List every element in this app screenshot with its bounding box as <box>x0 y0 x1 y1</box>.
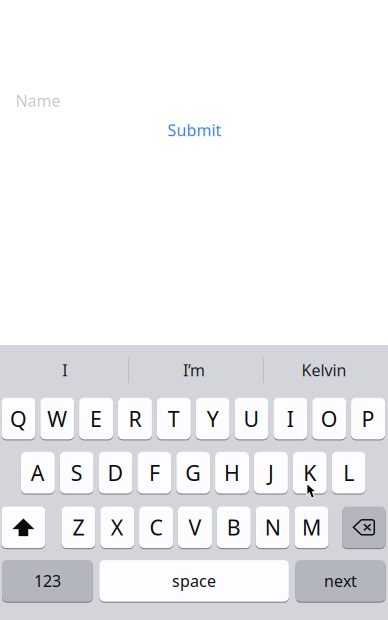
staticText: T <box>168 404 180 433</box>
staticText: O <box>321 404 338 433</box>
button[interactable]: Z <box>61 505 95 549</box>
staticText: I <box>62 359 67 381</box>
button[interactable]: E <box>79 397 113 440</box>
staticText: J <box>268 458 274 487</box>
staticText: Z <box>72 513 84 541</box>
button[interactable]: I <box>273 397 307 440</box>
button[interactable]: W <box>40 397 74 440</box>
staticText: B <box>227 513 241 541</box>
staticText: Name <box>15 90 60 111</box>
button[interactable]: space <box>99 559 289 603</box>
staticText: C <box>150 513 163 541</box>
staticText: H <box>224 458 240 487</box>
button[interactable]: Kelvin <box>259 346 388 394</box>
button[interactable]: K <box>293 451 327 494</box>
staticText: next <box>324 570 357 591</box>
staticText: W <box>47 404 67 433</box>
button[interactable]: R <box>118 397 152 440</box>
staticText: V <box>188 513 201 541</box>
button[interactable]: Q <box>1 397 35 440</box>
staticText: G <box>185 458 201 487</box>
button[interactable]: next <box>296 559 385 603</box>
button[interactable]: I <box>0 346 129 394</box>
staticText: E <box>90 404 102 433</box>
button[interactable]: D <box>98 451 132 494</box>
button[interactable]: Shift <box>1 505 45 549</box>
button[interactable]: Y <box>196 397 230 440</box>
button[interactable]: S <box>60 451 94 494</box>
button[interactable]: U <box>234 397 268 440</box>
staticText: X <box>111 513 124 541</box>
button[interactable]: L <box>332 451 366 494</box>
button[interactable]: H <box>215 451 249 494</box>
button[interactable]: B <box>217 505 251 549</box>
button[interactable]: 123 <box>2 559 93 603</box>
staticText: P <box>362 404 375 433</box>
staticText: I’m <box>183 359 205 381</box>
button[interactable]: I’m <box>129 346 258 394</box>
button[interactable]: A <box>21 451 55 494</box>
button[interactable]: T <box>157 397 191 440</box>
staticText: S <box>71 458 83 487</box>
staticText: R <box>128 404 141 433</box>
button[interactable]: O <box>312 397 346 440</box>
staticText: N <box>265 513 281 541</box>
staticText: A <box>31 458 45 487</box>
staticText: Kelvin <box>301 359 346 381</box>
button[interactable]: V <box>178 505 212 549</box>
button[interactable]: Delete <box>342 505 385 549</box>
staticText: space <box>172 570 216 591</box>
button[interactable]: C <box>139 505 173 549</box>
staticText: Submit <box>167 119 221 141</box>
staticText: L <box>343 458 354 487</box>
staticText: F <box>149 458 160 487</box>
button[interactable]: N <box>256 505 290 549</box>
staticText: M <box>302 513 321 541</box>
button[interactable]: Submit <box>134 115 254 145</box>
button[interactable]: G <box>176 451 210 494</box>
button[interactable]: P <box>351 397 385 440</box>
button[interactable]: X <box>100 505 134 549</box>
button[interactable]: M <box>294 505 328 549</box>
button[interactable]: F <box>137 451 171 494</box>
staticText: 123 <box>34 570 61 591</box>
staticText: Y <box>207 404 219 433</box>
button[interactable]: J <box>254 451 288 494</box>
staticText: D <box>107 458 123 487</box>
staticText: K <box>303 458 316 487</box>
staticText: Q <box>10 404 27 433</box>
staticText: U <box>243 404 259 433</box>
staticText: I <box>287 404 294 433</box>
